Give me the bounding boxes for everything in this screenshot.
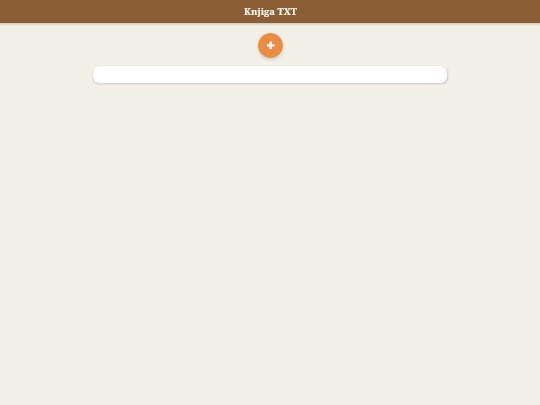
staticText: Knjiga TXT <box>244 5 297 18</box>
button[interactable]: Text input field <box>93 66 447 83</box>
button[interactable]: Add new text <box>258 33 283 58</box>
